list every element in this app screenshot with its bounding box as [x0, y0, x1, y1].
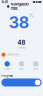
button[interactable]: Activity [0, 51, 43, 58]
staticText: 38 [9, 13, 29, 32]
staticText: Stats [19, 67, 24, 70]
staticText: Navigation Title [11, 2, 29, 11]
staticText: % [29, 13, 34, 18]
staticText: 9:41 [2, 0, 8, 4]
staticText: Progress [1, 74, 12, 77]
staticText: minutes [17, 46, 25, 49]
button[interactable]: More [29, 61, 43, 70]
button[interactable]: Stats [14, 61, 29, 70]
button[interactable]: Home [0, 61, 14, 70]
staticText: Home [4, 67, 10, 70]
staticText: More [33, 67, 38, 70]
staticText: 48 [17, 39, 25, 46]
staticText: Activity [7, 53, 19, 56]
